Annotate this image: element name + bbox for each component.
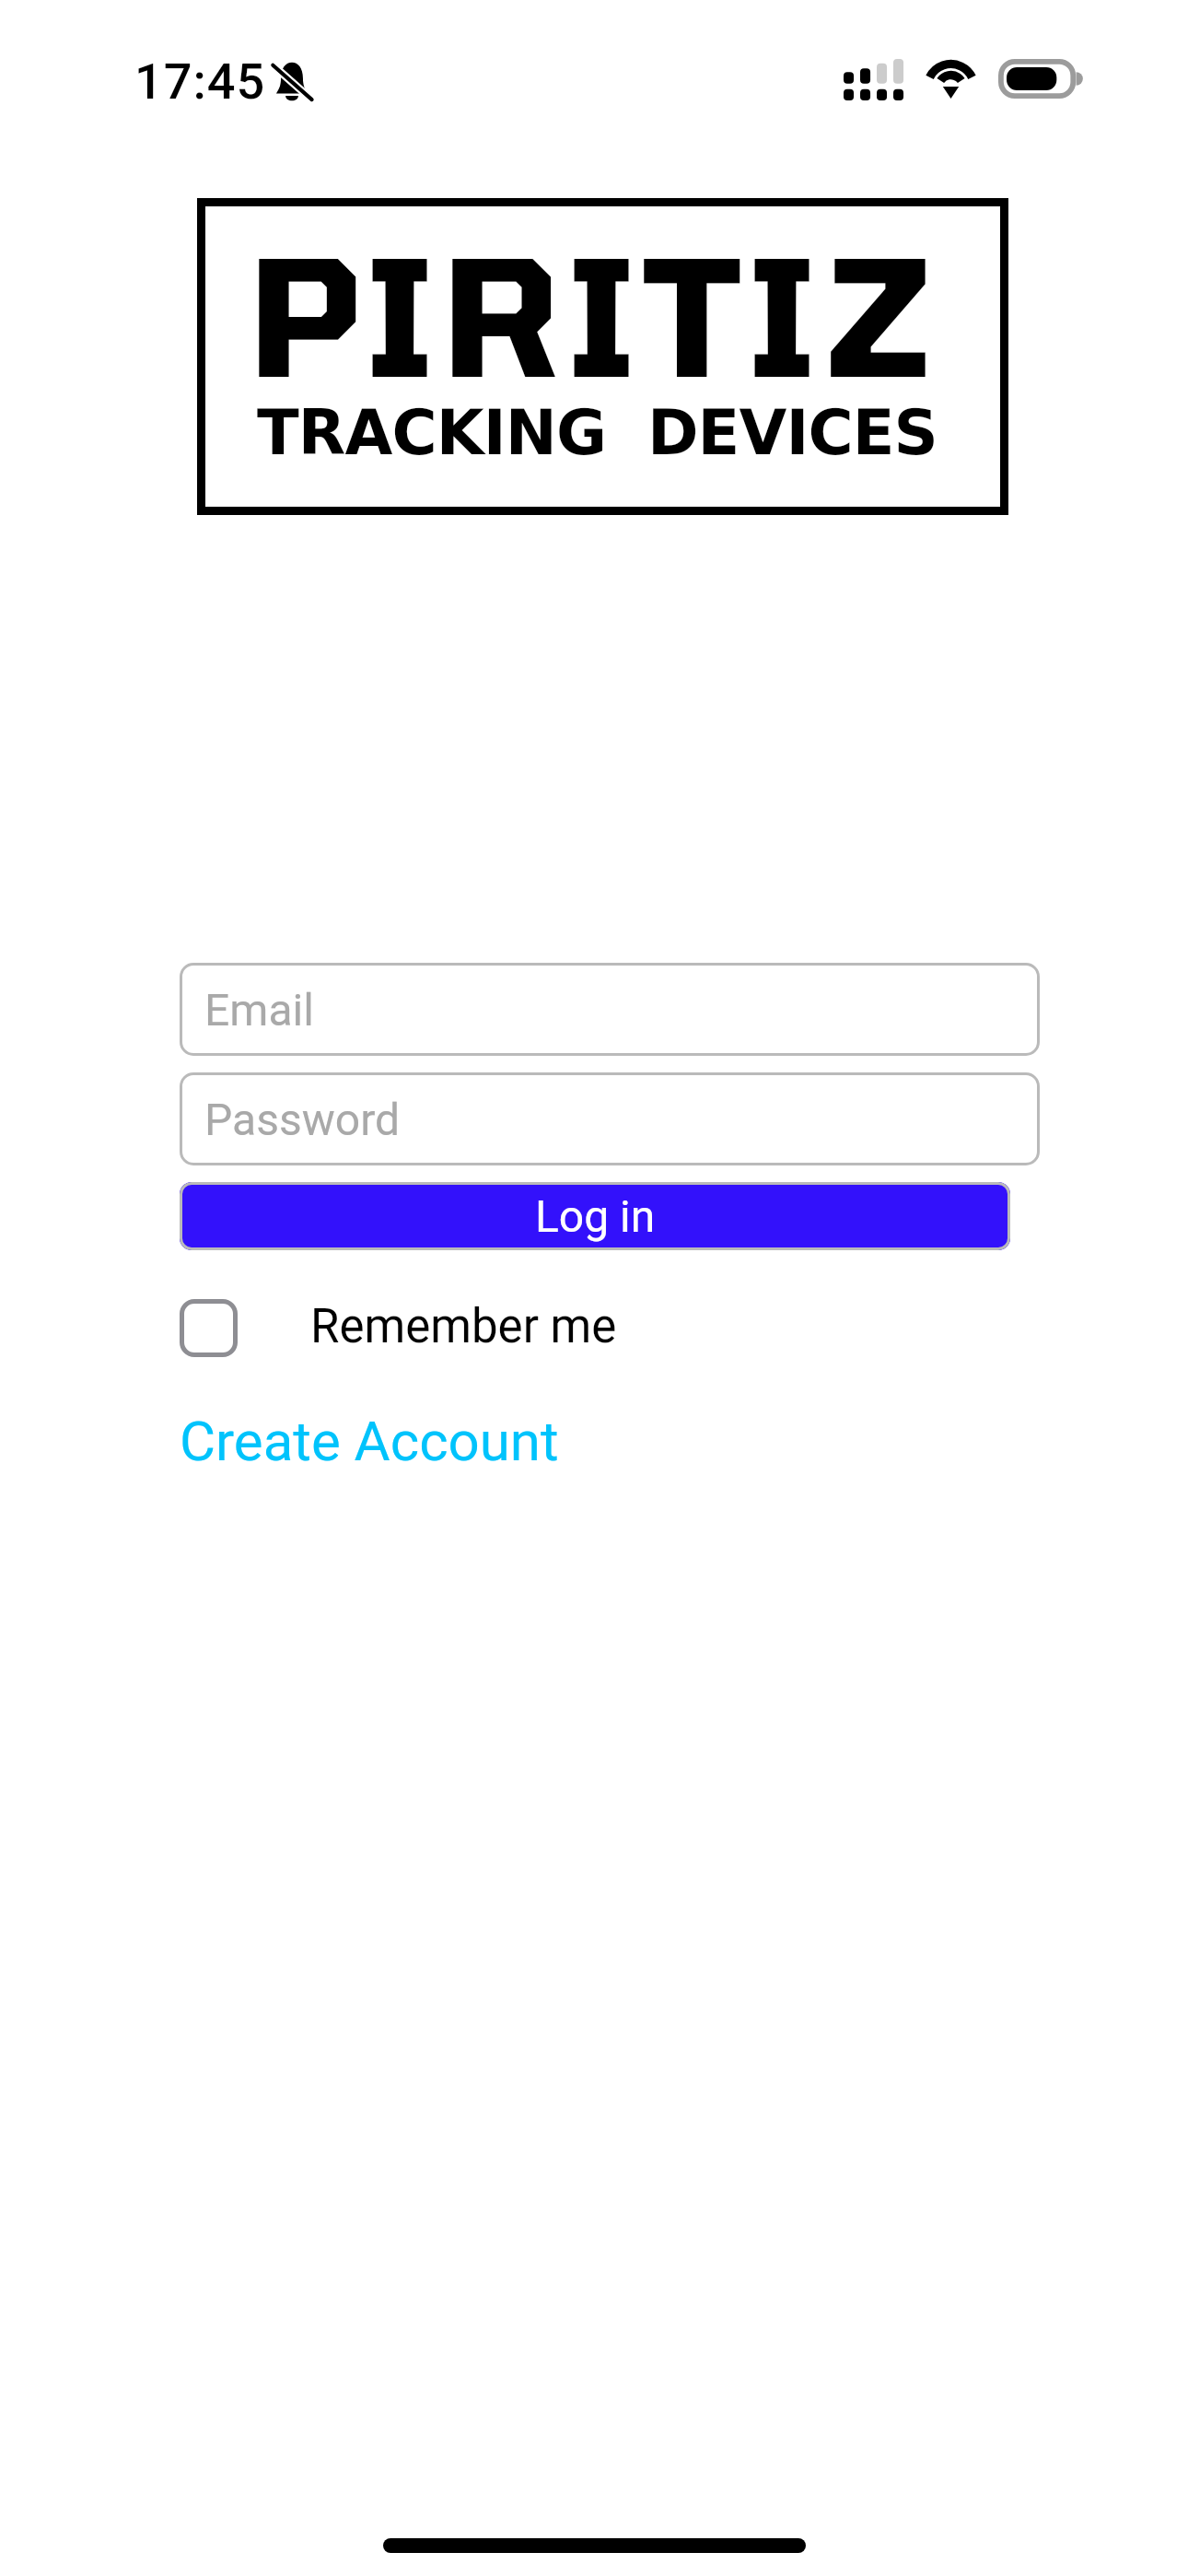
staticText: TRACKING DEVICES	[257, 397, 938, 469]
staticText: PIRITIZ	[248, 217, 941, 409]
staticText: Password	[204, 1094, 401, 1145]
staticText: Log in	[535, 1190, 656, 1242]
staticText: 17:45	[134, 53, 266, 111]
other: Remember me checkbox	[180, 1299, 238, 1357]
button[interactable]: Create Account	[180, 1409, 559, 1473]
staticText: Create Account	[180, 1409, 559, 1473]
button[interactable]: Log in	[180, 1182, 1010, 1250]
staticText: Email	[204, 984, 314, 1036]
button[interactable]: Password	[180, 1072, 1040, 1165]
staticText: Remember me	[310, 1299, 617, 1354]
button[interactable]: Email	[180, 963, 1040, 1056]
other: Notifications silenced	[271, 58, 313, 102]
button[interactable]: Remember me checkbox	[180, 1299, 617, 1357]
